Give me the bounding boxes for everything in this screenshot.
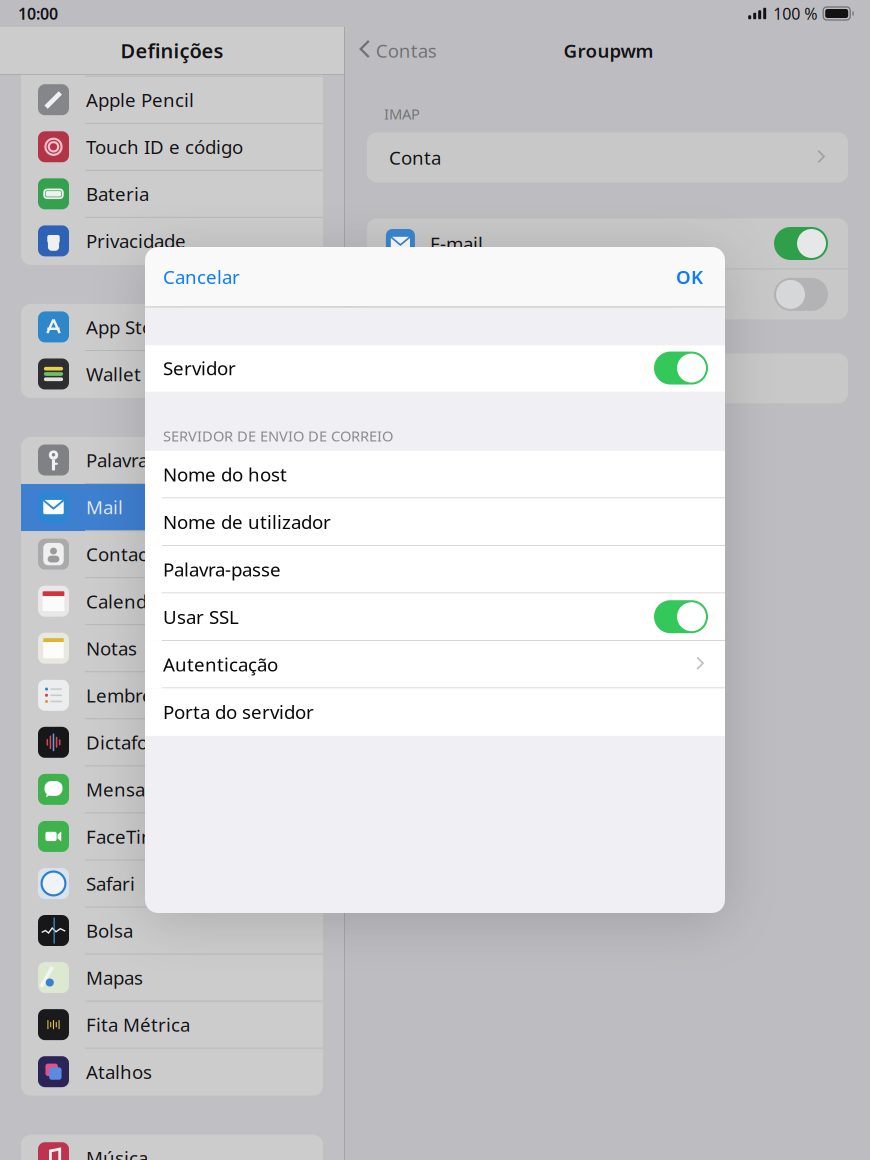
- staticText: SERVIDOR DE ENVIO DE CORREIO: [163, 426, 393, 445]
- staticText: Lembretes: [86, 683, 180, 708]
- staticText: Groupwm: [563, 38, 653, 63]
- button[interactable]: Contas: [345, 28, 437, 73]
- staticText: Fita Métrica: [86, 1012, 190, 1037]
- staticText: IMAP: [384, 104, 420, 123]
- button[interactable]: Contactos: [21, 531, 323, 578]
- staticText: Palavra-passe: [163, 557, 281, 582]
- staticText: FaceTime: [86, 824, 169, 849]
- button[interactable]: Fita Métrica: [21, 1002, 323, 1049]
- button[interactable]: Nome do host: [145, 451, 725, 498]
- button[interactable]: Safari: [21, 860, 323, 907]
- button[interactable]: Calendário: [21, 578, 323, 625]
- button[interactable]: Privacidade: [21, 218, 323, 265]
- button[interactable]: FaceTime: [21, 813, 323, 860]
- staticText: Contactos: [86, 542, 174, 566]
- button[interactable]: Mail: [21, 484, 323, 531]
- button[interactable]: Mapas: [21, 954, 323, 1001]
- staticText: Wallet e Apple Pay: [86, 362, 248, 386]
- staticText: Touch ID e código: [86, 134, 243, 159]
- staticText: Definições: [120, 37, 223, 64]
- button[interactable]: Nome de utilizador: [145, 498, 725, 546]
- button[interactable]: Autenticação: [145, 641, 725, 688]
- staticText: Música: [86, 1145, 148, 1160]
- button[interactable]: Wallet e Apple Pay: [21, 351, 323, 398]
- staticText: OK: [676, 264, 703, 289]
- button[interactable]: OK: [676, 252, 725, 301]
- staticText: Bolsa: [86, 918, 133, 943]
- button[interactable]: App Store: [21, 304, 323, 351]
- staticText: Mensagens: [86, 777, 188, 802]
- staticText: Dictafone: [86, 730, 171, 755]
- staticText: Nome do host: [163, 462, 287, 487]
- button[interactable]: Dictafone: [21, 719, 323, 766]
- staticText: E-mail: [430, 231, 483, 256]
- button[interactable]: Apple Pencil: [21, 77, 323, 124]
- button[interactable]: Conta: [367, 132, 848, 182]
- staticText: Nome de utilizador: [163, 509, 331, 534]
- staticText: Safari: [86, 871, 135, 896]
- staticText: App Store: [86, 314, 171, 339]
- staticText: Mail: [86, 495, 123, 519]
- staticText: 100 %: [773, 3, 817, 24]
- button[interactable]: Bolsa: [21, 907, 323, 954]
- button[interactable]: [21, 30, 323, 77]
- staticText: Privacidade: [86, 228, 186, 253]
- staticText: Calendário: [86, 589, 181, 614]
- staticText: Atalhos: [86, 1059, 152, 1084]
- staticText: Conta: [389, 145, 441, 170]
- staticText: Palavras-passe: [86, 448, 213, 472]
- button[interactable]: Mensagens: [21, 766, 323, 813]
- button[interactable]: Servidor: [145, 345, 725, 392]
- button[interactable]: Notas: [21, 625, 323, 672]
- staticText: Cancelar: [163, 264, 240, 289]
- staticText: Autenticação: [163, 652, 278, 677]
- staticText: 10:00: [18, 3, 58, 24]
- button[interactable]: Palavras-passe: [21, 437, 323, 484]
- staticText: Mapas: [86, 965, 143, 990]
- staticText: Contas: [376, 38, 437, 63]
- staticText: Servidor: [163, 356, 236, 380]
- button[interactable]: Bateria: [21, 171, 323, 218]
- staticText: Bateria: [86, 181, 149, 206]
- staticText: Apple Pencil: [86, 87, 194, 112]
- button[interactable]: Palavra-passe: [145, 546, 725, 593]
- button[interactable]: Usar SSL: [145, 593, 725, 641]
- button[interactable]: Touch ID e código: [21, 124, 323, 171]
- button[interactable]: Música: [21, 1135, 323, 1160]
- button[interactable]: Cancelar: [145, 252, 240, 301]
- button[interactable]: Atalhos: [21, 1049, 323, 1096]
- staticText: Notas: [86, 636, 137, 661]
- button[interactable]: Porta do servidor: [145, 688, 725, 736]
- staticText: Usar SSL: [163, 604, 239, 629]
- button[interactable]: Lembretes: [21, 672, 323, 719]
- staticText: Porta do servidor: [163, 699, 314, 724]
